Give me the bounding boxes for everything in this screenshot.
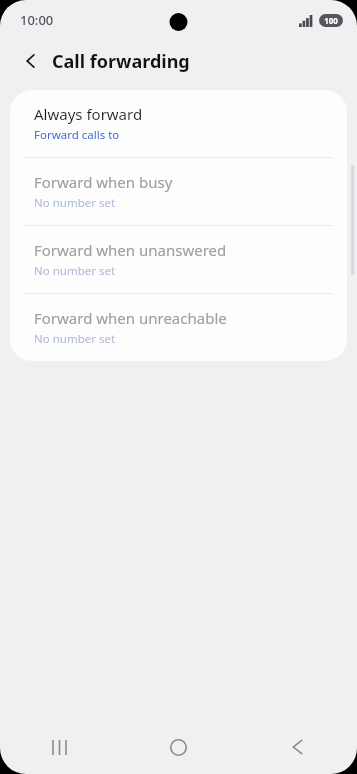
staticText: No number set: [34, 195, 116, 211]
staticText: 100: [324, 15, 338, 26]
button[interactable]: Recents: [0, 720, 119, 774]
staticText: Forward when unanswered: [34, 240, 227, 260]
staticText: Always forward: [34, 104, 143, 124]
staticText: No number set: [34, 331, 116, 347]
button[interactable]: Forward when unreachable: [10, 294, 347, 361]
button[interactable]: Forward when busy: [10, 158, 347, 225]
button[interactable]: Forward when unanswered: [10, 226, 347, 293]
button[interactable]: Back: [238, 720, 357, 774]
button[interactable]: Home: [119, 720, 238, 774]
button[interactable]: Back: [14, 44, 48, 78]
staticText: Forward when unreachable: [34, 308, 227, 328]
staticText: 10:00: [20, 11, 54, 29]
button[interactable]: Always forward: [10, 90, 347, 157]
staticText: Forward calls to: [34, 127, 120, 143]
staticText: No number set: [34, 263, 116, 279]
staticText: Forward when busy: [34, 172, 173, 192]
staticText: Call forwarding: [52, 49, 190, 74]
